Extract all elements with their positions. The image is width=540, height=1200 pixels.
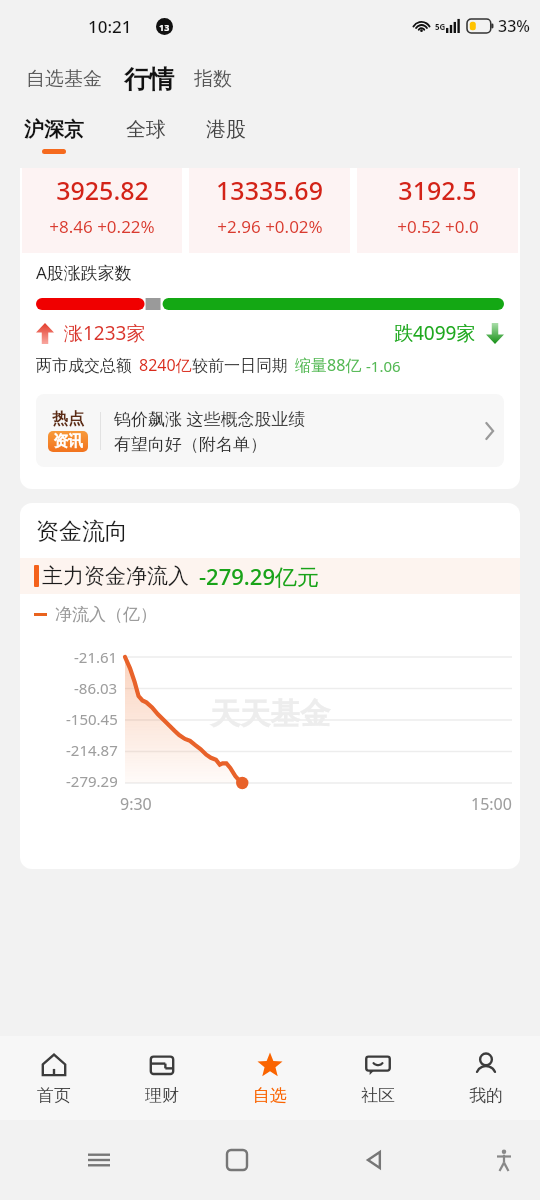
staticText: +2.96 +0.02% (217, 215, 323, 238)
button[interactable]: 自选基金 (24, 63, 104, 95)
other: 更多热点资讯 (474, 394, 504, 467)
staticText: -150.45 (66, 709, 118, 729)
staticText: +0.52 +0.0 (397, 215, 479, 238)
button[interactable]: 理财 (108, 1036, 216, 1120)
staticText: 缩量88亿 (295, 354, 362, 376)
button[interactable]: 首页 (0, 1036, 108, 1120)
button[interactable]: Recent apps (60, 1120, 138, 1200)
button[interactable]: 自选 (216, 1036, 324, 1120)
staticText: 我的 (469, 1085, 503, 1106)
staticText: 15:00 (471, 793, 512, 815)
staticText: -279.29 (66, 771, 118, 791)
staticText: 13335.69 (216, 173, 323, 207)
staticText: 自选 (253, 1085, 287, 1106)
staticText: 3192.5 (398, 173, 477, 207)
staticText: -279.29亿元 (199, 561, 319, 591)
staticText: 33% (498, 15, 530, 37)
staticText: 涨1233家 (64, 320, 146, 346)
button[interactable]: 港股 (202, 123, 250, 148)
staticText: -214.87 (66, 740, 118, 760)
staticText: 较前一日同期 (192, 356, 288, 376)
staticText: -21.61 (74, 647, 118, 667)
staticText: 资金流向 (36, 517, 128, 546)
button[interactable]: 全球 (122, 123, 170, 148)
button[interactable]: 指数 (192, 63, 234, 95)
staticText: 港股 (206, 117, 246, 142)
staticText: -1.06 (366, 356, 401, 376)
staticText: A股涨跌家数 (36, 261, 132, 284)
button[interactable]: 热点 (36, 394, 504, 467)
staticText: 净流入（亿） (55, 604, 157, 625)
staticText: 社区 (361, 1085, 395, 1106)
staticText: 13 (159, 21, 170, 33)
button[interactable]: 我的 (432, 1036, 540, 1120)
staticText: 跌4099家 (394, 320, 476, 346)
staticText: 10:21 (88, 15, 132, 38)
staticText: 理财 (145, 1085, 179, 1106)
staticText: 全球 (126, 117, 166, 142)
button[interactable]: 行情 (122, 60, 176, 99)
button[interactable]: 社区 (324, 1036, 432, 1120)
staticText: 资讯 (53, 432, 83, 451)
staticText: 天天基金 (210, 695, 330, 733)
staticText: 首页 (37, 1085, 71, 1106)
staticText: 热点 (52, 409, 84, 429)
staticText: 3925.82 (56, 173, 149, 207)
staticText: +8.46 +0.22% (49, 215, 155, 238)
staticText: 9:30 (120, 793, 152, 815)
staticText: 主力资金净流入 (42, 563, 189, 589)
button[interactable]: Back (336, 1120, 414, 1200)
button[interactable]: Accessibility (474, 1120, 534, 1200)
staticText: 8240亿 (139, 354, 192, 376)
staticText: 5G (435, 21, 446, 32)
button[interactable]: Home (198, 1120, 276, 1200)
staticText: 指数 (194, 67, 232, 91)
staticText: -86.03 (74, 678, 118, 698)
staticText: 钨价飙涨 这些概念股业绩 (114, 407, 306, 430)
staticText: 有望向好（附名单） (114, 434, 267, 455)
staticText: 沪深京 (24, 117, 84, 142)
button[interactable]: 沪深京 (20, 117, 88, 154)
staticText: 自选基金 (26, 67, 102, 91)
staticText: 行情 (124, 64, 174, 95)
staticText: 两市成交总额 (36, 356, 132, 376)
